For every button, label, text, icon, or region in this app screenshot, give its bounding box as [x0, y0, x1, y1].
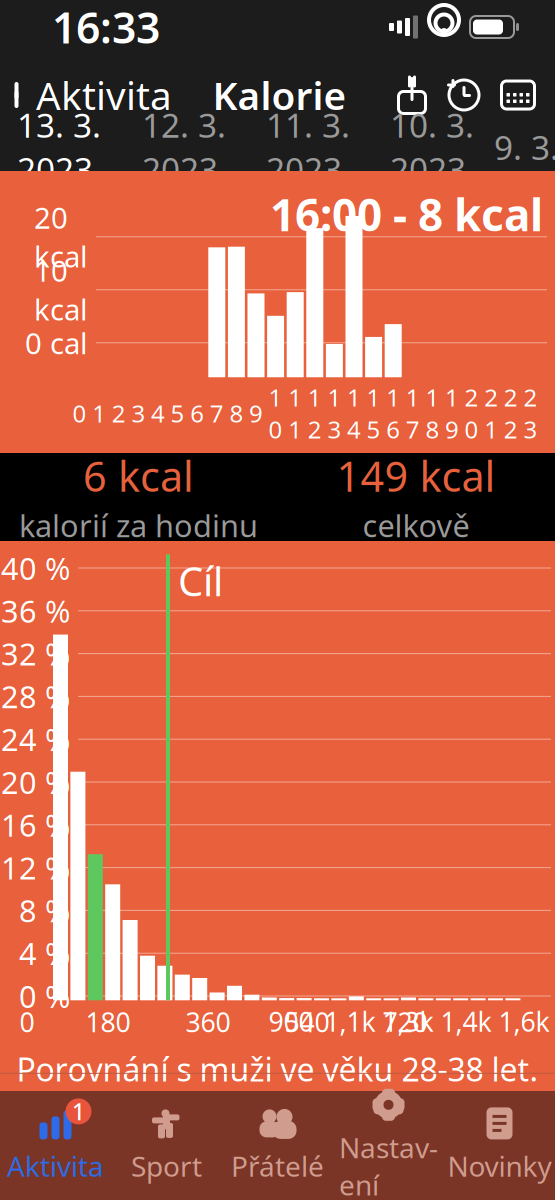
staticText: 1,6k: [498, 1004, 549, 1039]
staticText: 24 %: [1, 719, 70, 759]
staticText: 6 kcal: [83, 448, 194, 503]
button[interactable]: Sport: [111, 1102, 222, 1187]
staticText: Sport: [131, 1147, 202, 1185]
staticText: Novinky: [447, 1147, 551, 1185]
button[interactable]: 12. 3. 2023: [122, 97, 246, 197]
staticText: Kalorie: [212, 69, 346, 121]
staticText: Aktivita: [7, 1147, 104, 1185]
button[interactable]: 9. 3.: [494, 119, 555, 175]
staticText: 2: [112, 397, 126, 429]
staticText: 4: [151, 397, 165, 429]
staticText: 18: [425, 381, 439, 445]
staticText: 11. 3. 2023: [266, 103, 350, 191]
staticText: 10 kcal: [34, 251, 88, 329]
staticText: 360: [185, 1004, 230, 1040]
staticText: 12. 3. 2023: [142, 103, 226, 191]
staticText: 15: [367, 381, 381, 445]
staticText: 14: [347, 381, 361, 445]
staticText: celkově: [362, 505, 469, 546]
staticText: 13: [327, 381, 341, 445]
staticText: Nastavení: [339, 1129, 438, 1200]
staticText: 40 %: [1, 548, 70, 588]
staticText: 12: [308, 381, 322, 445]
staticText: 180: [85, 1004, 130, 1040]
button[interactable]: Calendar: [491, 69, 545, 121]
button[interactable]: History: [437, 68, 491, 122]
staticText: 36 %: [1, 590, 70, 631]
staticText: 16:33: [52, 0, 160, 55]
staticText: Aktivita: [36, 69, 172, 121]
staticText: 9. 3.: [494, 125, 555, 169]
staticText: 16 %: [1, 804, 70, 845]
staticText: 0 cal: [25, 323, 88, 362]
staticText: 9: [249, 397, 263, 429]
staticText: 0: [19, 1004, 34, 1040]
staticText: 22: [504, 381, 518, 445]
staticText: 10: [269, 381, 283, 445]
staticText: 20: [465, 381, 479, 445]
staticText: 28 %: [1, 676, 70, 717]
button[interactable]: 10. 3. 2023: [370, 97, 494, 197]
staticText: 4 %: [19, 933, 70, 973]
staticText: 5: [171, 397, 185, 429]
button[interactable]: Přátelé: [222, 1102, 333, 1187]
staticText: 21: [484, 381, 498, 445]
staticText: 32 %: [1, 633, 70, 674]
staticText: 900: [268, 1004, 313, 1039]
staticText: 20 kcal: [34, 198, 88, 276]
staticText: 0: [73, 397, 87, 429]
staticText: kalorií za hodinu: [19, 505, 258, 546]
staticText: 540: [284, 1004, 329, 1040]
staticText: 1: [92, 397, 106, 429]
button[interactable]: 11. 3. 2023: [246, 97, 370, 197]
staticText: 1,4k: [440, 1004, 491, 1039]
staticText: 10. 3. 2023: [390, 103, 474, 191]
staticText: 16:00 - 8 kcal: [270, 185, 543, 243]
staticText: 1,3k: [382, 1004, 433, 1039]
button[interactable]: 13. 3. 2023: [0, 97, 122, 197]
staticText: 20 %: [1, 762, 70, 802]
staticText: 7: [210, 397, 224, 429]
staticText: 23: [523, 381, 537, 445]
staticText: Přátelé: [231, 1147, 324, 1185]
button[interactable]: 1: [0, 1102, 111, 1187]
button[interactable]: Nastavení: [333, 1084, 444, 1200]
staticText: 13. 3. 2023: [17, 103, 101, 191]
staticText: 12 %: [1, 847, 70, 888]
staticText: 6: [190, 397, 204, 429]
staticText: 149 kcal: [336, 448, 495, 503]
staticText: Cíl: [178, 554, 223, 607]
staticText: 16: [386, 381, 400, 445]
staticText: 8: [229, 397, 243, 429]
staticText: 11: [288, 381, 302, 445]
staticText: 3: [131, 397, 145, 429]
staticText: 720: [382, 1004, 427, 1040]
staticText: Porovnání s muži ve věku 28-38 let.: [16, 1048, 538, 1090]
button[interactable]: Novinky: [444, 1102, 555, 1187]
staticText: 1: [72, 1096, 85, 1126]
button[interactable]: Aktivita: [0, 59, 172, 131]
staticText: 0 %: [19, 976, 70, 1016]
staticText: 19: [445, 381, 459, 445]
button[interactable]: Share: [387, 66, 437, 124]
staticText: 1,1k: [324, 1004, 375, 1039]
staticText: 8 %: [19, 890, 70, 931]
staticText: 17: [406, 381, 420, 445]
